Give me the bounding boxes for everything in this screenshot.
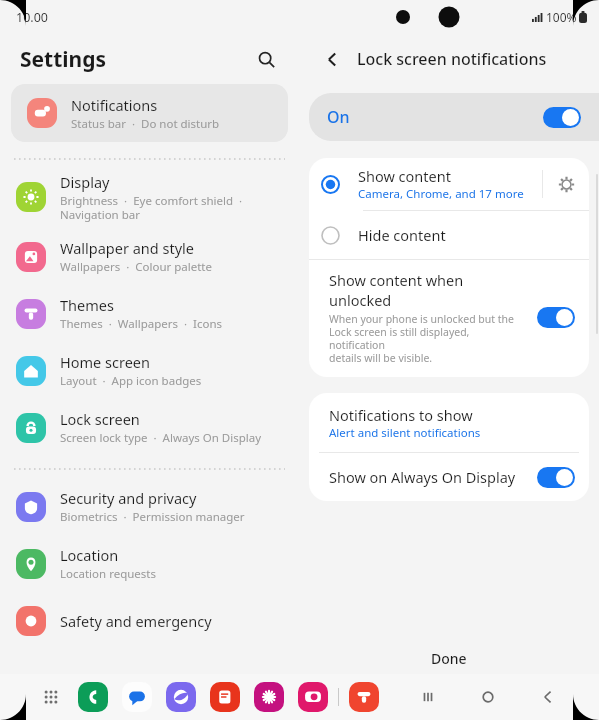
button[interactable]: Hide content — [309, 211, 589, 259]
button[interactable]: Wallpaper and style — [0, 228, 299, 285]
staticText: Show on Always On Display — [329, 467, 516, 487]
staticText: Alert and silent notifications — [329, 425, 481, 441]
button[interactable]: Show content — [309, 158, 589, 210]
staticText: Biometrics · Permission manager — [60, 509, 245, 525]
button[interactable]: Done — [409, 643, 489, 674]
button[interactable]: Location — [0, 535, 299, 592]
button[interactable]: Themes — [0, 285, 299, 342]
button[interactable]: Phone — [78, 682, 108, 712]
button[interactable]: Settings — [543, 158, 589, 210]
staticText: 10.00 — [16, 9, 48, 26]
button[interactable]: Display — [0, 166, 299, 228]
staticText: Safety and emergency — [60, 611, 212, 631]
button[interactable]: Show on Always On Display — [309, 453, 589, 501]
staticText: Hide content — [358, 225, 446, 245]
button[interactable]: Toggle — [543, 107, 581, 128]
staticText: Location requests — [60, 566, 156, 582]
staticText: Security and privacy — [60, 488, 197, 508]
button[interactable]: Notes — [210, 682, 240, 712]
button[interactable]: Back — [533, 682, 563, 712]
button[interactable]: Safety and emergency — [0, 592, 299, 649]
staticText: Lock screen — [60, 409, 140, 429]
button[interactable]: Camera — [298, 682, 328, 712]
button[interactable]: Search — [249, 42, 283, 76]
button[interactable]: Home — [473, 682, 503, 712]
button[interactable]: Home screen — [0, 342, 299, 399]
button[interactable]: Notifications to show — [309, 393, 589, 452]
button[interactable]: Security and privacy — [0, 478, 299, 535]
staticText: Camera, Chrome, and 17 more — [358, 186, 524, 202]
staticText: Lock screen notifications — [357, 48, 547, 70]
button[interactable]: Show content when unlocked — [309, 260, 589, 377]
button[interactable]: Back — [317, 44, 347, 74]
button[interactable]: Themes — [349, 682, 379, 712]
staticText: Location — [60, 545, 119, 565]
staticText: Brightness · Eye comfort shield · Naviga… — [60, 193, 243, 222]
staticText: Display — [60, 172, 110, 192]
button[interactable]: Notifications — [11, 84, 288, 142]
button[interactable]: Gallery — [254, 682, 284, 712]
staticText: Notifications — [71, 95, 158, 115]
staticText: Notifications to show — [329, 405, 473, 425]
staticText: Show content when unlocked — [329, 270, 527, 310]
staticText: On — [327, 106, 350, 128]
staticText: Screen lock type · Always On Display — [60, 430, 262, 446]
staticText: Themes · Wallpapers · Icons — [60, 316, 222, 332]
staticText: Done — [431, 649, 467, 668]
button[interactable]: Apps — [36, 682, 66, 712]
staticText: Show content — [358, 166, 451, 186]
staticText: Wallpapers · Colour palette — [60, 259, 212, 275]
button[interactable]: On — [309, 93, 599, 141]
staticText: Layout · App icon badges — [60, 373, 202, 389]
button[interactable]: Toggle — [537, 467, 575, 488]
button[interactable]: Recents — [413, 682, 443, 712]
staticText: Wallpaper and style — [60, 238, 194, 258]
button[interactable]: Toggle — [537, 307, 575, 328]
staticText: Themes — [60, 295, 114, 315]
staticText: Home screen — [60, 352, 150, 372]
button[interactable]: Internet — [166, 682, 196, 712]
button[interactable]: Lock screen — [0, 399, 299, 456]
staticText: When your phone is unlocked but the Lock… — [329, 312, 527, 365]
staticText: 100% — [546, 9, 577, 25]
staticText: Settings — [20, 45, 107, 74]
staticText: Status bar · Do not disturb — [71, 116, 220, 132]
button[interactable]: Messages — [122, 682, 152, 712]
